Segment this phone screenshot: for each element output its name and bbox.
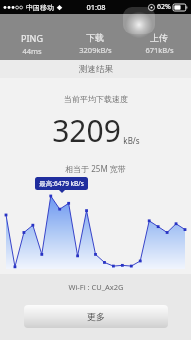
staticText: 相当于 25M 宽带 bbox=[65, 163, 126, 174]
other: Battery 62 percent bbox=[173, 4, 188, 11]
staticText: 3209 bbox=[52, 110, 121, 151]
button[interactable]: PING bbox=[0, 32, 63, 56]
staticText: 62% bbox=[157, 2, 171, 12]
other: Wi-Fi bbox=[56, 4, 63, 11]
staticText: 671kB/s bbox=[145, 45, 174, 55]
staticText: kB/s bbox=[123, 135, 140, 146]
staticText: 当前平均下载速度 bbox=[64, 94, 128, 104]
staticText: 测速结果 bbox=[79, 64, 113, 75]
other: Location bbox=[148, 4, 155, 11]
staticText: 下载 bbox=[86, 32, 104, 43]
staticText: 01:08 bbox=[86, 2, 106, 12]
staticText: PING bbox=[21, 32, 43, 44]
staticText: 中国移动 bbox=[26, 3, 54, 12]
staticText: 44ms bbox=[22, 46, 42, 56]
other: Signal strength bbox=[3, 4, 24, 11]
staticText: 最高:6479 kB/s bbox=[39, 179, 84, 188]
staticText: 3209kB/s bbox=[79, 45, 112, 55]
staticText: Wi-Fi : CU_Ax2G bbox=[68, 282, 124, 292]
staticText: 上传 bbox=[150, 32, 168, 43]
staticText: 更多 bbox=[87, 311, 105, 322]
button[interactable]: 下载 bbox=[63, 32, 127, 55]
button[interactable]: 更多 bbox=[24, 305, 168, 328]
button[interactable]: 上传 bbox=[127, 32, 191, 55]
